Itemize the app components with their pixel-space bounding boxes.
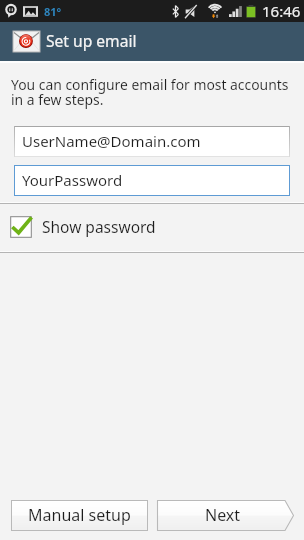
staticText: 16:46 [262,1,301,21]
staticText: Set up email [46,30,137,51]
staticText: 81° [44,4,62,19]
button[interactable]: Set up email [0,22,304,61]
button[interactable]: Manual setup [11,500,148,531]
button[interactable]: Next [157,500,294,531]
staticText: UserName@Domain.com [22,131,201,151]
staticText: Manual setup [28,504,131,526]
button[interactable]: UserName@Domain.com [14,126,290,157]
staticText: Next [205,504,241,526]
button[interactable]: Show password [0,204,304,251]
button[interactable]: YourPassword [14,165,290,196]
staticText: YourPassword [22,170,123,190]
staticText: You can configure email for most account… [11,75,289,109]
staticText: Show password [42,216,156,237]
